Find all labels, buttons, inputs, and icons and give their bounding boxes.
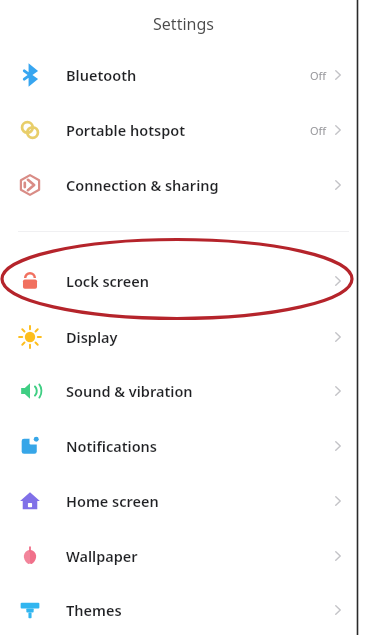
button[interactable]: Bluetooth — [0, 48, 367, 102]
staticText: Portable hotspot — [66, 120, 186, 140]
staticText: Settings — [153, 13, 214, 35]
button[interactable]: Themes — [0, 583, 367, 635]
staticText: Lock screen — [66, 271, 150, 291]
staticText: Wallpaper — [66, 546, 138, 566]
staticText: Bluetooth — [66, 65, 137, 85]
button[interactable]: Home screen — [0, 474, 367, 528]
button[interactable]: Wallpaper — [0, 529, 367, 583]
staticText: Off — [310, 68, 327, 83]
staticText: Sound & vibration — [66, 381, 193, 401]
staticText: Themes — [66, 600, 122, 620]
button[interactable]: Connection & sharing — [0, 158, 367, 212]
staticText: Home screen — [66, 491, 159, 511]
staticText: Connection & sharing — [66, 175, 219, 195]
button[interactable]: Display — [0, 310, 367, 364]
button[interactable]: Sound & vibration — [0, 364, 367, 418]
button[interactable]: Notifications — [0, 419, 367, 473]
button[interactable]: Portable hotspot — [0, 103, 367, 157]
staticText: Off — [310, 123, 327, 138]
staticText: Display — [66, 327, 118, 347]
button[interactable]: Lock screen — [0, 254, 367, 308]
staticText: Notifications — [66, 436, 158, 456]
